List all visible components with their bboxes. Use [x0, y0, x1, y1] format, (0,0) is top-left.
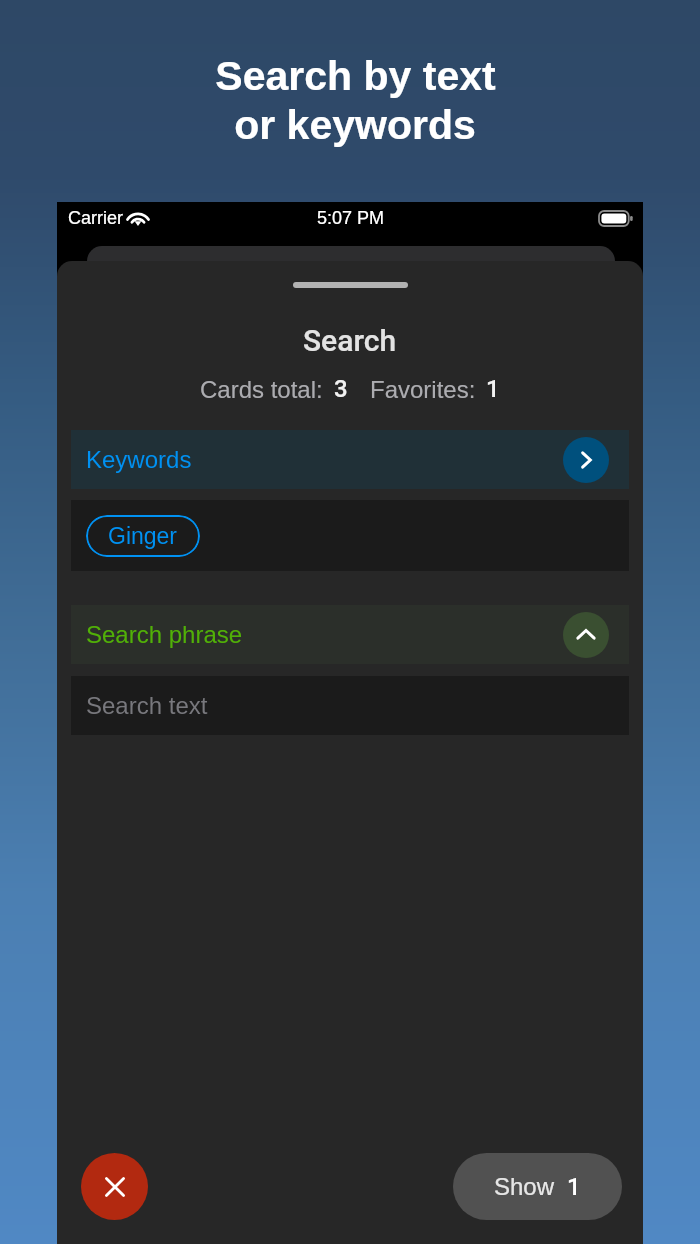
- staticText: or keywords: [234, 102, 476, 148]
- staticText: 1: [486, 375, 500, 403]
- other: Wi-Fi: [127, 210, 149, 226]
- staticText: Carrier: [68, 208, 124, 228]
- staticText: Show: [494, 1173, 555, 1200]
- staticText: Keywords: [86, 446, 192, 473]
- button[interactable]: Ginger: [86, 515, 200, 557]
- staticText: Search phrase: [86, 621, 243, 648]
- staticText: Search by text: [215, 53, 496, 99]
- button[interactable]: Search phrase: [71, 605, 629, 664]
- staticText: 3: [334, 375, 348, 403]
- button[interactable]: Show: [453, 1153, 622, 1220]
- staticText: 1: [567, 1173, 581, 1201]
- button[interactable]: Collapse search phrase: [563, 612, 609, 658]
- staticText: Search: [303, 323, 397, 358]
- staticText: Ginger: [108, 523, 178, 549]
- staticText: 5:07 PM: [317, 208, 385, 228]
- staticText: Cards total:: [200, 376, 323, 403]
- button[interactable]: Search text: [71, 676, 629, 735]
- button[interactable]: Open keywords: [563, 437, 609, 483]
- button[interactable]: Keywords: [71, 430, 629, 489]
- button[interactable]: Close: [81, 1153, 148, 1220]
- staticText: Search text: [86, 692, 208, 719]
- staticText: Favorites:: [370, 376, 476, 403]
